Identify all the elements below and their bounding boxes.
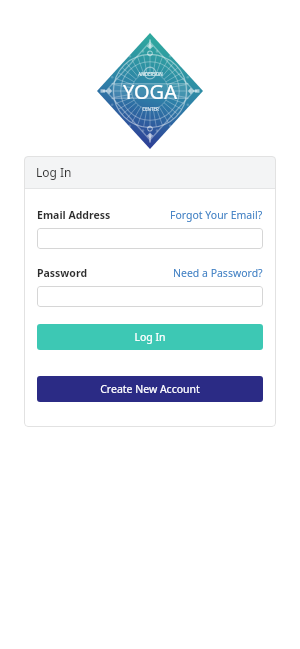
button[interactable]: Create New Account xyxy=(37,376,263,402)
staticText: ANDERSON xyxy=(138,71,163,77)
staticText: YOGA xyxy=(123,78,177,105)
staticText: Create New Account xyxy=(100,382,200,396)
staticText: Password xyxy=(37,266,88,280)
staticText: Log In xyxy=(36,164,72,180)
staticText: Email Address xyxy=(37,208,111,222)
button[interactable] xyxy=(37,286,263,307)
button[interactable]: Forgot Your Email? xyxy=(170,208,263,222)
button[interactable]: Log In xyxy=(37,324,263,350)
button[interactable]: Need a Password? xyxy=(173,266,263,280)
button[interactable] xyxy=(37,228,263,249)
staticText: Need a Password? xyxy=(173,266,263,280)
staticText: Log In xyxy=(134,330,166,344)
staticText: Forgot Your Email? xyxy=(170,208,263,222)
other: Anderson Yoga Center logo xyxy=(97,33,203,149)
staticText: CENTER xyxy=(142,106,159,112)
